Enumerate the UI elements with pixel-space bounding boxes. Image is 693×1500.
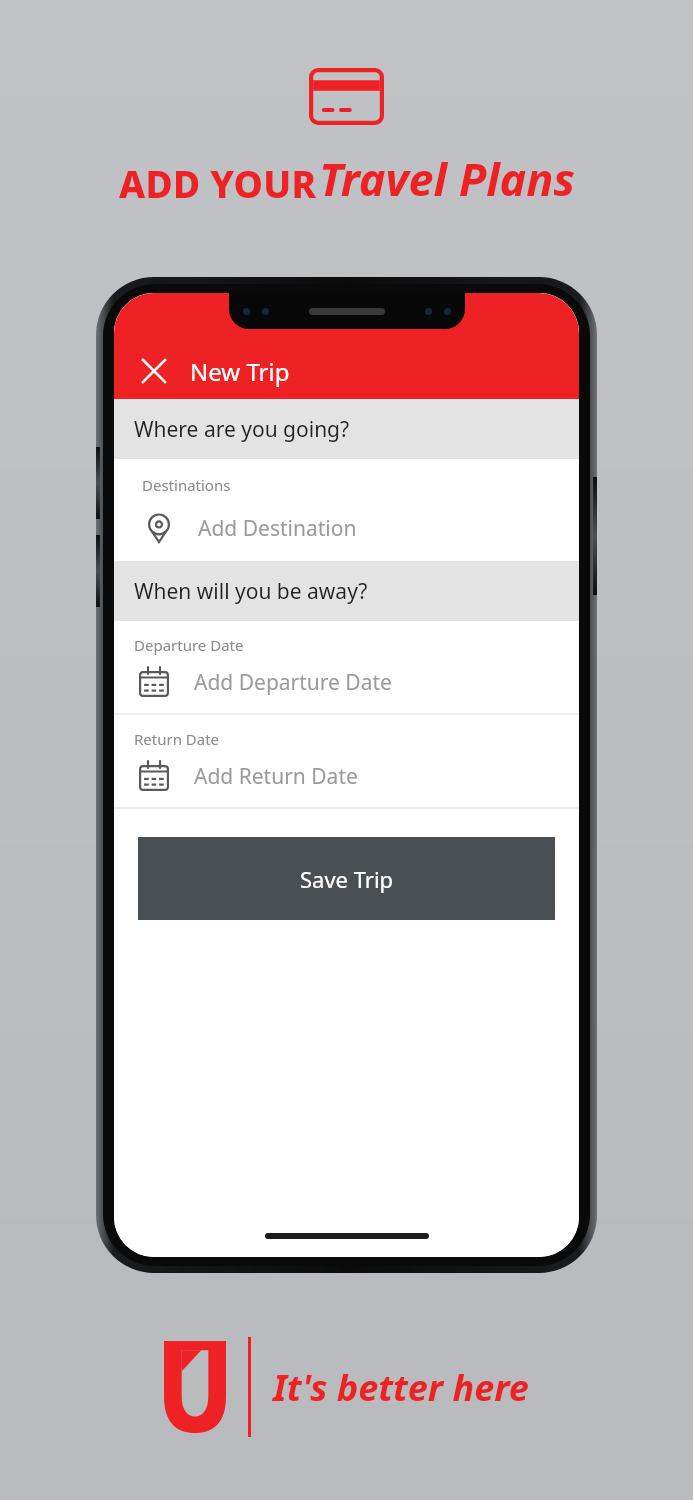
staticText: Add Destination [198,514,357,543]
staticText: Destinations [142,475,231,495]
button[interactable]: Close [134,351,174,391]
staticText: Add Departure Date [194,668,392,697]
staticText: Departure Date [134,635,244,655]
button[interactable]: Destinations [114,459,579,561]
staticText: Where are you going? [134,415,350,444]
button[interactable]: Departure Date [114,621,579,713]
staticText: Add Return Date [194,762,358,791]
staticText: When will you be away? [134,577,368,606]
staticText: Return Date [134,729,220,749]
staticText: New Trip [190,355,290,388]
staticText: ADD YOUR [119,158,317,208]
staticText: Save Trip [300,864,394,894]
button[interactable]: Return Date [114,715,579,807]
button[interactable]: Save Trip [138,837,555,920]
staticText: Travel Plans [319,148,575,209]
staticText: It's better here [273,1363,529,1412]
